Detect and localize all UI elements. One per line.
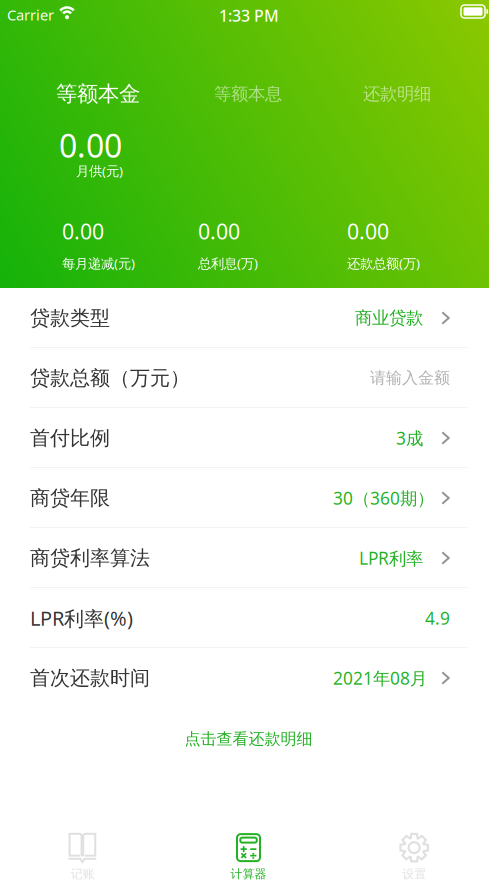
staticText: 商业贷款 <box>355 307 423 329</box>
button[interactable]: 等额本金 <box>23 81 173 107</box>
button[interactable]: LPR利率(%) <box>0 588 489 648</box>
staticText: 请输入金额 <box>370 368 450 388</box>
staticText: 0.00 <box>59 124 122 166</box>
button[interactable]: 还款明细 <box>322 81 472 107</box>
staticText: 商贷年限 <box>30 486 110 510</box>
button[interactable]: 计算器 <box>166 833 331 881</box>
button[interactable]: 商贷年限 <box>0 468 489 528</box>
button[interactable]: 贷款总额（万元） <box>0 348 489 408</box>
staticText: 2021年08月 <box>333 666 427 689</box>
staticText: 首付比例 <box>30 426 110 450</box>
staticText: 1:33 PM <box>219 5 279 26</box>
staticText: 等额本息 <box>214 83 282 105</box>
staticText: 设置 <box>402 867 426 881</box>
button[interactable]: 首付比例 <box>0 408 489 468</box>
staticText: 0.00 <box>62 217 104 245</box>
staticText: 首次还款时间 <box>30 666 150 690</box>
staticText: 总利息(万) <box>198 254 258 272</box>
staticText: 贷款总额（万元） <box>30 366 190 390</box>
button[interactable]: 商贷利率算法 <box>0 528 489 588</box>
button[interactable]: 贷款类型 <box>0 288 489 348</box>
button[interactable]: 等额本息 <box>173 81 323 107</box>
staticText: 4.9 <box>425 606 450 629</box>
staticText: 30（360期） <box>333 486 434 509</box>
button[interactable]: 首次还款时间 <box>0 648 489 708</box>
staticText: 记账 <box>71 867 95 881</box>
staticText: 商贷利率算法 <box>30 546 150 570</box>
staticText: 每月递减(元) <box>62 254 135 272</box>
staticText: 还款总额(万) <box>347 254 420 272</box>
staticText: Carrier <box>7 5 54 24</box>
staticText: 0.00 <box>347 217 389 245</box>
staticText: 点击查看还款明细 <box>184 729 312 749</box>
staticText: 还款明细 <box>363 83 431 105</box>
button[interactable]: 设置 <box>331 833 497 881</box>
staticText: 0.00 <box>198 217 240 245</box>
staticText: LPR利率 <box>359 546 423 569</box>
button[interactable]: 点击查看还款明细 <box>0 726 497 752</box>
staticText: 计算器 <box>230 867 266 881</box>
staticText: 3成 <box>396 426 423 449</box>
staticText: 贷款类型 <box>30 306 110 330</box>
staticText: 等额本金 <box>56 81 140 107</box>
button[interactable]: 记账 <box>0 833 166 881</box>
staticText: 月供(元) <box>76 162 123 180</box>
staticText: LPR利率(%) <box>30 605 133 631</box>
